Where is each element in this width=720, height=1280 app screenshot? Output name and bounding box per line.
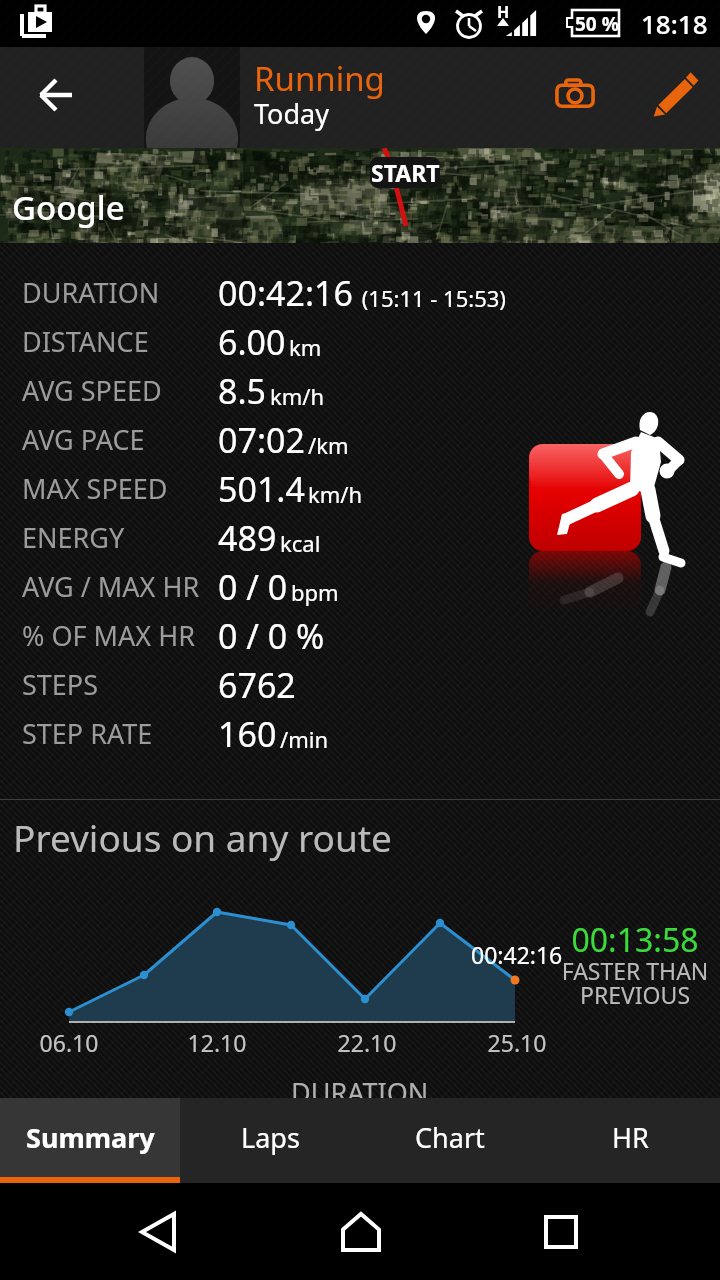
button[interactable]: Laps: [180, 1098, 360, 1177]
staticText: Running: [254, 56, 385, 101]
staticText: FASTER THAN: [550, 955, 720, 986]
staticText: km: [289, 332, 322, 362]
staticText: DURATION: [291, 1074, 429, 1111]
button[interactable]: Back: [0, 47, 144, 148]
staticText: MAX SPEED: [22, 470, 168, 507]
staticText: STEP RATE: [22, 715, 153, 752]
staticText: 50 %: [575, 11, 619, 37]
staticText: 6762: [218, 662, 296, 708]
staticText: 6.00: [218, 319, 286, 365]
staticText: Chart: [415, 1119, 485, 1156]
staticText: 160: [218, 711, 277, 757]
staticText: HR: [612, 1119, 649, 1156]
staticText: 0 / 0: [218, 564, 288, 610]
staticText: Laps: [241, 1119, 300, 1156]
staticText: STEPS: [22, 666, 99, 703]
button[interactable]: Summary: [0, 1098, 180, 1177]
staticText: H: [497, 1, 510, 23]
staticText: % OF MAX HR: [22, 617, 195, 654]
staticText: /km: [308, 430, 349, 460]
staticText: 489: [218, 515, 277, 561]
button[interactable]: HR: [540, 1098, 720, 1177]
staticText: km/h: [270, 381, 325, 411]
button[interactable]: Chart: [360, 1098, 540, 1177]
staticText: Previous on any route: [13, 812, 392, 862]
staticText: kcal: [280, 528, 321, 558]
staticText: PREVIOUS: [550, 979, 720, 1010]
staticText: 0 / 0 %: [218, 613, 325, 659]
staticText: Google: [12, 185, 125, 230]
staticText: 8.5: [218, 368, 267, 414]
staticText: 07:02: [218, 417, 305, 463]
staticText: AVG PACE: [22, 421, 145, 458]
staticText: DISTANCE: [22, 323, 149, 360]
staticText: (15:11 - 15:53): [356, 283, 506, 313]
staticText: START: [371, 157, 440, 188]
staticText: 06.10: [29, 1027, 109, 1058]
staticText: 22.10: [327, 1027, 407, 1058]
staticText: 12.10: [177, 1027, 257, 1058]
staticText: /min: [280, 724, 329, 754]
staticText: Today: [254, 95, 329, 132]
staticText: DURATION: [22, 274, 160, 311]
button[interactable]: Edit: [630, 47, 720, 148]
button[interactable]: Recents: [481, 1183, 681, 1280]
button[interactable]: Back: [81, 1183, 241, 1280]
staticText: 25.10: [477, 1027, 557, 1058]
staticText: 501.4: [218, 466, 305, 512]
staticText: ENERGY: [22, 519, 125, 556]
staticText: bpm: [291, 577, 339, 607]
staticText: 00:42:16: [218, 270, 353, 316]
staticText: AVG / MAX HR: [22, 568, 200, 605]
staticText: 00:42:16: [471, 939, 563, 970]
staticText: Summary: [26, 1119, 155, 1156]
staticText: 18:18: [641, 6, 708, 41]
button[interactable]: Home: [241, 1183, 481, 1280]
button[interactable]: Open route map: [0, 148, 720, 243]
staticText: 00:13:58: [552, 918, 718, 962]
staticText: km/h: [308, 479, 363, 509]
button[interactable]: Camera: [530, 47, 630, 148]
staticText: AVG SPEED: [22, 372, 162, 409]
